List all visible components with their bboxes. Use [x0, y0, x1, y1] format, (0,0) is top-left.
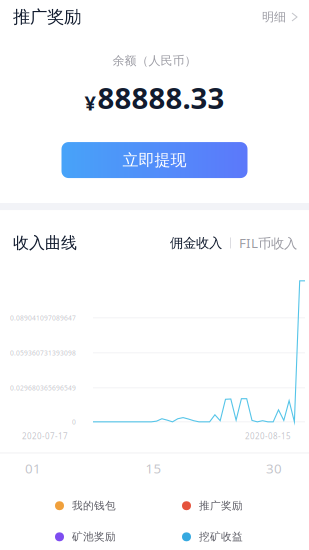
staticText: 明细 — [262, 10, 286, 24]
staticText: 0.029680365696549 — [10, 383, 76, 392]
staticText: 余额（人民币） — [112, 53, 196, 68]
staticText: 推广奖励 — [199, 499, 243, 512]
staticText: 15 — [145, 459, 161, 477]
staticText: 0 — [72, 417, 76, 426]
button[interactable]: 立即提现 — [61, 142, 247, 178]
staticText: 01 — [25, 459, 41, 477]
button[interactable]: FIL币收入 — [239, 231, 297, 255]
staticText: 矿池奖励 — [72, 530, 116, 543]
staticText: 佣金收入 — [170, 235, 222, 251]
staticText: 2020-07-17 — [22, 431, 68, 441]
staticText: 挖矿收益 — [199, 530, 243, 543]
staticText: 0.089041097089647 — [10, 313, 76, 322]
staticText: 0.059360731393098 — [10, 348, 76, 357]
staticText: 2020-08-15 — [245, 431, 291, 441]
staticText: 我的钱包 — [72, 499, 116, 512]
button[interactable]: 明细 — [262, 6, 297, 28]
staticText: ¥ — [84, 89, 95, 116]
staticText: 88888.33 — [97, 78, 224, 117]
staticText: FIL币收入 — [239, 234, 297, 252]
staticText: 收入曲线 — [13, 233, 77, 253]
staticText: 立即提现 — [122, 150, 186, 170]
button[interactable]: 佣金收入 — [170, 232, 222, 254]
staticText: 推广奖励 — [13, 6, 81, 28]
staticText: 30 — [266, 459, 282, 477]
